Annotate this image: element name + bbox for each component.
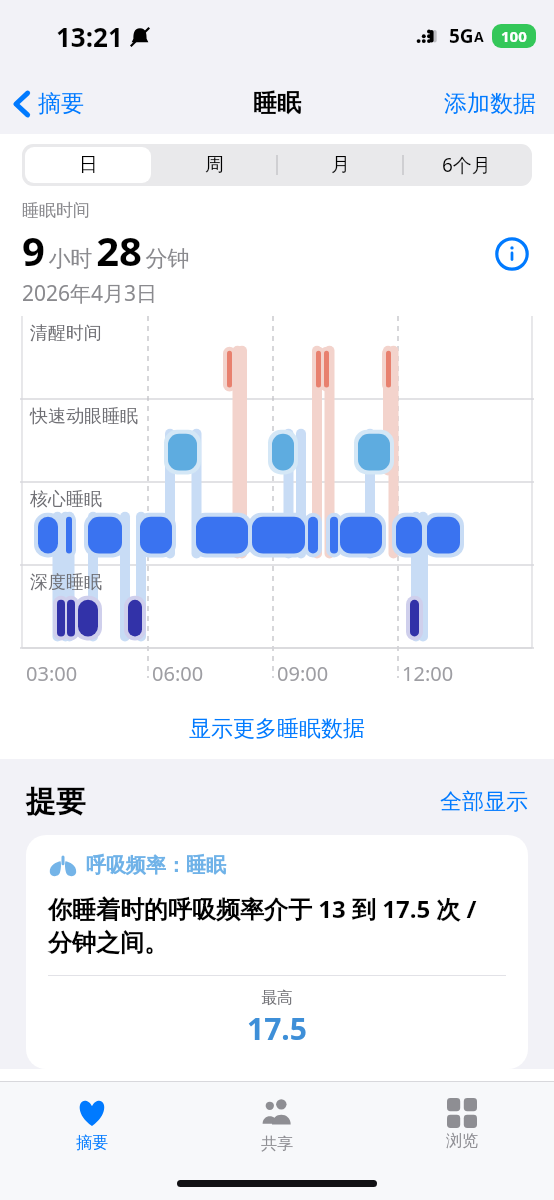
staticText: 2026年4月3日 xyxy=(22,279,158,308)
staticText: 6个月 xyxy=(442,152,491,178)
staticText: 周 xyxy=(205,153,224,177)
staticText: A xyxy=(474,27,484,46)
button[interactable]: 呼吸频率：睡眠 xyxy=(26,835,528,1069)
button[interactable]: 月 xyxy=(277,147,403,183)
staticText: 深度睡眠 xyxy=(30,571,102,594)
staticText: 9 小时 28 分钟 xyxy=(22,223,190,277)
staticText: 你睡着时的呼吸频率介于 13 到 17.5 次 / 分钟之间。 xyxy=(48,892,477,959)
staticText: 摘要 xyxy=(38,89,84,118)
button[interactable]: 摘要 xyxy=(0,1082,184,1166)
staticText: 睡眠时间 xyxy=(22,200,90,221)
button[interactable]: 6个月 xyxy=(403,147,529,183)
staticText: 核心睡眠 xyxy=(30,488,102,511)
staticText: 显示更多睡眠数据 xyxy=(189,715,365,743)
button[interactable]: 共享 xyxy=(184,1082,369,1166)
button[interactable]: 显示更多睡眠数据 xyxy=(0,700,554,758)
staticText: 06:00 xyxy=(152,660,204,687)
staticText: 共享 xyxy=(261,1134,293,1154)
staticText: 12:00 xyxy=(402,660,454,687)
staticText: 全部显示 xyxy=(440,788,528,816)
button[interactable]: 全部显示 xyxy=(440,788,528,816)
button[interactable]: 摘要 xyxy=(14,89,84,118)
staticText: 摘要 xyxy=(76,1133,108,1153)
staticText: 100 xyxy=(501,26,527,46)
staticText: 09:00 xyxy=(277,660,329,687)
staticText: 呼吸频率：睡眠 xyxy=(86,853,226,878)
staticText: 提要 xyxy=(26,783,86,821)
staticText: 5G xyxy=(449,23,474,49)
staticText: 清醒时间 xyxy=(30,322,102,345)
staticText: 最高 xyxy=(261,988,293,1008)
button[interactable]: 日 xyxy=(25,147,151,183)
staticText: 日 xyxy=(79,153,98,177)
staticText: 添加数据 xyxy=(444,89,536,118)
staticText: 13:21 xyxy=(56,19,123,54)
staticText: 月 xyxy=(331,153,350,177)
button[interactable]: 信息 xyxy=(492,234,532,274)
staticText: 浏览 xyxy=(446,1131,478,1151)
staticText: 03:00 xyxy=(26,660,78,687)
staticText: 睡眠 xyxy=(253,88,301,118)
staticText: 快速动眼睡眠 xyxy=(30,405,138,428)
button[interactable]: 浏览 xyxy=(369,1082,554,1166)
button[interactable]: 周 xyxy=(151,147,277,183)
staticText: 17.5 xyxy=(247,1008,307,1049)
button[interactable]: 添加数据 xyxy=(444,89,536,118)
